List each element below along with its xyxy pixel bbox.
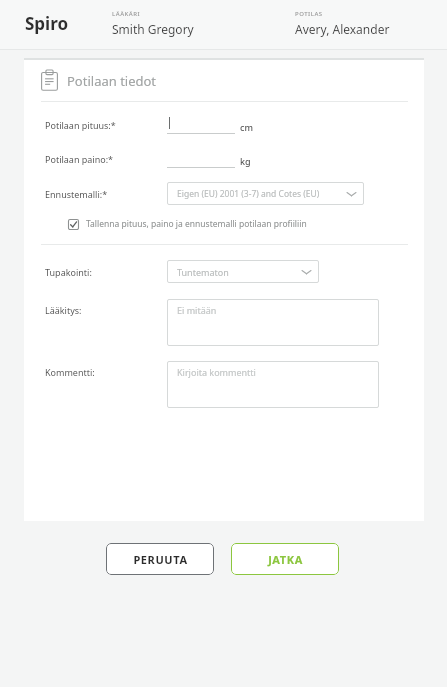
button[interactable]: Kirjoita kommentti bbox=[167, 361, 379, 408]
staticText: Tuntematon bbox=[177, 266, 298, 278]
other: Save to profile bbox=[68, 219, 79, 230]
button[interactable]: Save to profile bbox=[68, 218, 307, 230]
button[interactable] bbox=[167, 116, 235, 134]
staticText: Spiro bbox=[25, 12, 69, 35]
staticText: Tupakointi: bbox=[45, 266, 167, 278]
staticText: Potilaan pituus:* bbox=[45, 119, 167, 131]
other: Patient details bbox=[41, 70, 58, 91]
staticText: POTILAS bbox=[295, 10, 323, 18]
staticText: Kirjoita kommentti bbox=[177, 366, 256, 378]
staticText: Kommentti: bbox=[45, 366, 167, 378]
staticText: kg bbox=[240, 155, 251, 167]
staticText: Smith Gregory bbox=[112, 21, 194, 37]
staticText: Potilaan tiedot bbox=[67, 72, 157, 90]
button[interactable]: Eigen (EU) 2001 (3-7) and Cotes (EU) bbox=[167, 182, 364, 205]
staticText: Avery, Alexander bbox=[295, 21, 390, 37]
staticText: Ennustemalli:* bbox=[45, 188, 167, 200]
button[interactable]: PERUUTA bbox=[106, 543, 214, 575]
staticText: PERUUTA bbox=[133, 552, 188, 567]
staticText: Ei mitään bbox=[177, 304, 217, 316]
button[interactable]: Ei mitään bbox=[167, 299, 379, 346]
staticText: JATKA bbox=[268, 552, 303, 567]
staticText: Tallenna pituus, paino ja ennustemalli p… bbox=[86, 218, 307, 230]
staticText: Potilaan paino:* bbox=[45, 153, 167, 165]
staticText: LÄÄKÄRI bbox=[112, 10, 141, 18]
staticText: cm bbox=[240, 121, 253, 133]
staticText: Lääkitys: bbox=[45, 304, 167, 316]
button[interactable]: Tuntematon bbox=[167, 260, 319, 283]
staticText: Eigen (EU) 2001 (3-7) and Cotes (EU) bbox=[177, 188, 343, 200]
button[interactable] bbox=[167, 150, 235, 168]
button[interactable]: JATKA bbox=[231, 543, 339, 575]
